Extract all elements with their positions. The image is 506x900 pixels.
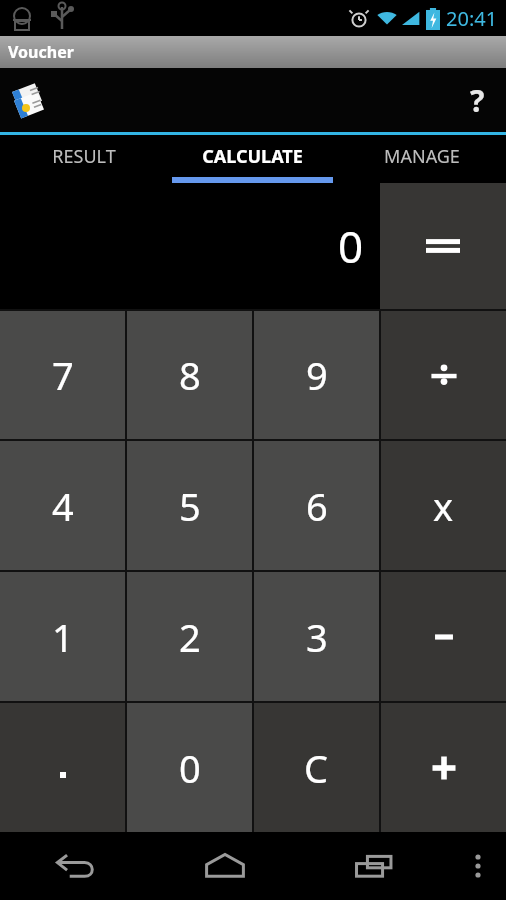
staticText: 9 [306,349,328,401]
staticText: 6 [306,480,328,532]
button[interactable]: 0 [0,183,380,309]
staticText: CALCULATE [202,144,303,169]
staticText: 20:41 [446,5,498,32]
button[interactable]: Equals [380,183,506,309]
button[interactable]: 2 [127,572,252,701]
button[interactable]: MANAGE [337,135,506,177]
button[interactable]: Decimal point [0,703,125,832]
button[interactable]: CALCULATE [168,135,337,177]
button[interactable]: Recent apps [300,832,450,900]
staticText: RESULT [52,144,116,169]
button[interactable]: App logo [5,75,55,125]
button[interactable]: 9 [254,311,379,439]
staticText: C [304,742,329,794]
staticText: 3 [306,611,328,663]
button[interactable]: Divide [381,311,506,439]
staticText: x [433,480,454,532]
button[interactable]: RESULT [0,135,168,177]
staticText: 8 [179,349,201,401]
button[interactable]: Back [0,832,150,900]
button[interactable]: C [254,703,379,832]
button[interactable]: 6 [254,441,379,570]
staticText: Voucher [8,41,74,63]
button[interactable]: More options [450,832,506,900]
button[interactable]: Plus [381,703,506,832]
staticText: MANAGE [384,144,460,169]
button[interactable]: x [381,441,506,570]
staticText: 5 [179,480,201,532]
button[interactable]: Minus [381,572,506,701]
staticText: 0 [179,742,201,794]
staticText: 2 [179,611,201,663]
button[interactable]: 8 [127,311,252,439]
staticText: 4 [52,480,74,532]
button[interactable]: Help [448,68,506,132]
button[interactable]: 5 [127,441,252,570]
button[interactable]: 0 [127,703,252,832]
staticText: 0 [338,216,364,276]
button[interactable]: Home [150,832,300,900]
button[interactable]: 7 [0,311,125,439]
button[interactable]: 1 [0,572,125,701]
staticText: 7 [52,349,74,401]
button[interactable]: 4 [0,441,125,570]
staticText: ? [470,80,485,121]
button[interactable]: 3 [254,572,379,701]
staticText: 1 [52,611,74,663]
